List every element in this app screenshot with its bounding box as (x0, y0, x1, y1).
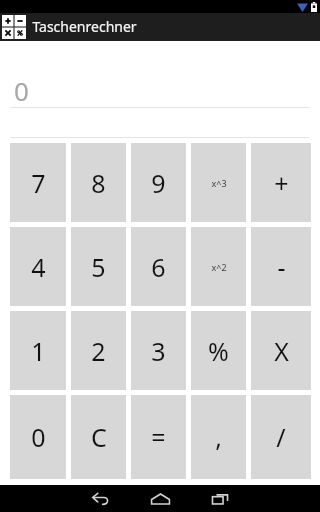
button[interactable]: C (71, 395, 126, 479)
button[interactable]: Recent apps (199, 485, 241, 512)
staticText: 8 (91, 166, 106, 200)
staticText: 2 (91, 334, 106, 368)
staticText: C (91, 420, 107, 454)
staticText: x^2 (211, 261, 227, 273)
button[interactable]: / (251, 395, 311, 479)
staticText: 6 (151, 250, 166, 284)
button[interactable]: Home (139, 485, 181, 512)
button[interactable]: 7 (10, 143, 66, 222)
button[interactable]: 2 (71, 311, 126, 390)
staticText: 5 (91, 250, 106, 284)
staticText: = (151, 420, 166, 454)
button[interactable]: 3 (131, 311, 186, 390)
button[interactable]: + (251, 143, 311, 222)
staticText: Taschenrechner (32, 17, 137, 36)
button[interactable]: 0 (0, 73, 320, 107)
button[interactable]: 4 (10, 227, 66, 306)
staticText: X (274, 334, 289, 368)
staticText: % (208, 334, 229, 368)
button[interactable]: , (191, 395, 246, 479)
staticText: 1 (31, 334, 46, 368)
button[interactable]: X (251, 311, 311, 390)
button[interactable]: 6 (131, 227, 186, 306)
staticText: 7 (31, 166, 46, 200)
button[interactable]: - (251, 227, 311, 306)
staticText: 0 (14, 73, 29, 107)
staticText: 3 (151, 334, 166, 368)
staticText: / (276, 420, 286, 454)
button[interactable]: 9 (131, 143, 186, 222)
button[interactable]: 5 (71, 227, 126, 306)
button[interactable]: Back (79, 485, 121, 512)
button[interactable]: 0 (10, 395, 66, 479)
staticText: , (215, 420, 222, 454)
button[interactable]: = (131, 395, 186, 479)
staticText: 4 (31, 250, 46, 284)
button[interactable]: 8 (71, 143, 126, 222)
button[interactable]: x^2 (191, 227, 246, 306)
staticText: 9 (151, 166, 166, 200)
staticText: 0 (31, 420, 46, 454)
staticText: x^3 (211, 177, 227, 189)
staticText: - (277, 250, 286, 284)
button[interactable]: x^3 (191, 143, 246, 222)
button[interactable]: % (191, 311, 246, 390)
button[interactable]: 1 (10, 311, 66, 390)
staticText: + (274, 166, 289, 200)
